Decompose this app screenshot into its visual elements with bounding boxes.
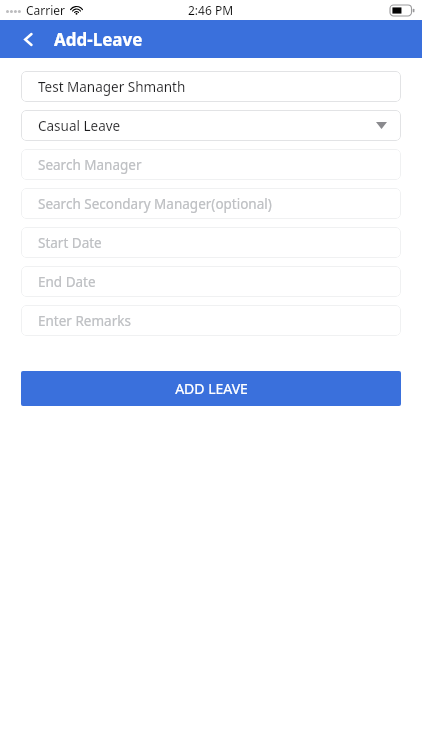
staticText: Add-Leave <box>54 28 143 51</box>
button[interactable]: Casual Leave <box>21 110 401 141</box>
button[interactable]: Enter Remarks <box>21 305 401 336</box>
staticText: Carrier <box>26 2 66 18</box>
staticText: Search Manager <box>38 156 142 174</box>
staticText: Enter Remarks <box>38 312 131 330</box>
staticText: 2:46 PM <box>188 2 234 18</box>
staticText: Search Secondary Manager(optional) <box>38 195 272 213</box>
button[interactable]: Back <box>12 23 44 55</box>
button[interactable]: Start Date <box>21 227 401 258</box>
staticText: End Date <box>38 273 96 291</box>
button[interactable]: End Date <box>21 266 401 297</box>
staticText: Casual Leave <box>38 117 121 135</box>
button[interactable]: ADD LEAVE <box>21 371 401 406</box>
staticText: Test Manager Shmanth <box>38 78 186 96</box>
button[interactable]: Search Manager <box>21 149 401 180</box>
staticText: ADD LEAVE <box>175 379 248 398</box>
button[interactable]: Search Secondary Manager(optional) <box>21 188 401 219</box>
button[interactable]: Test Manager Shmanth <box>21 71 401 102</box>
staticText: Start Date <box>38 234 102 252</box>
